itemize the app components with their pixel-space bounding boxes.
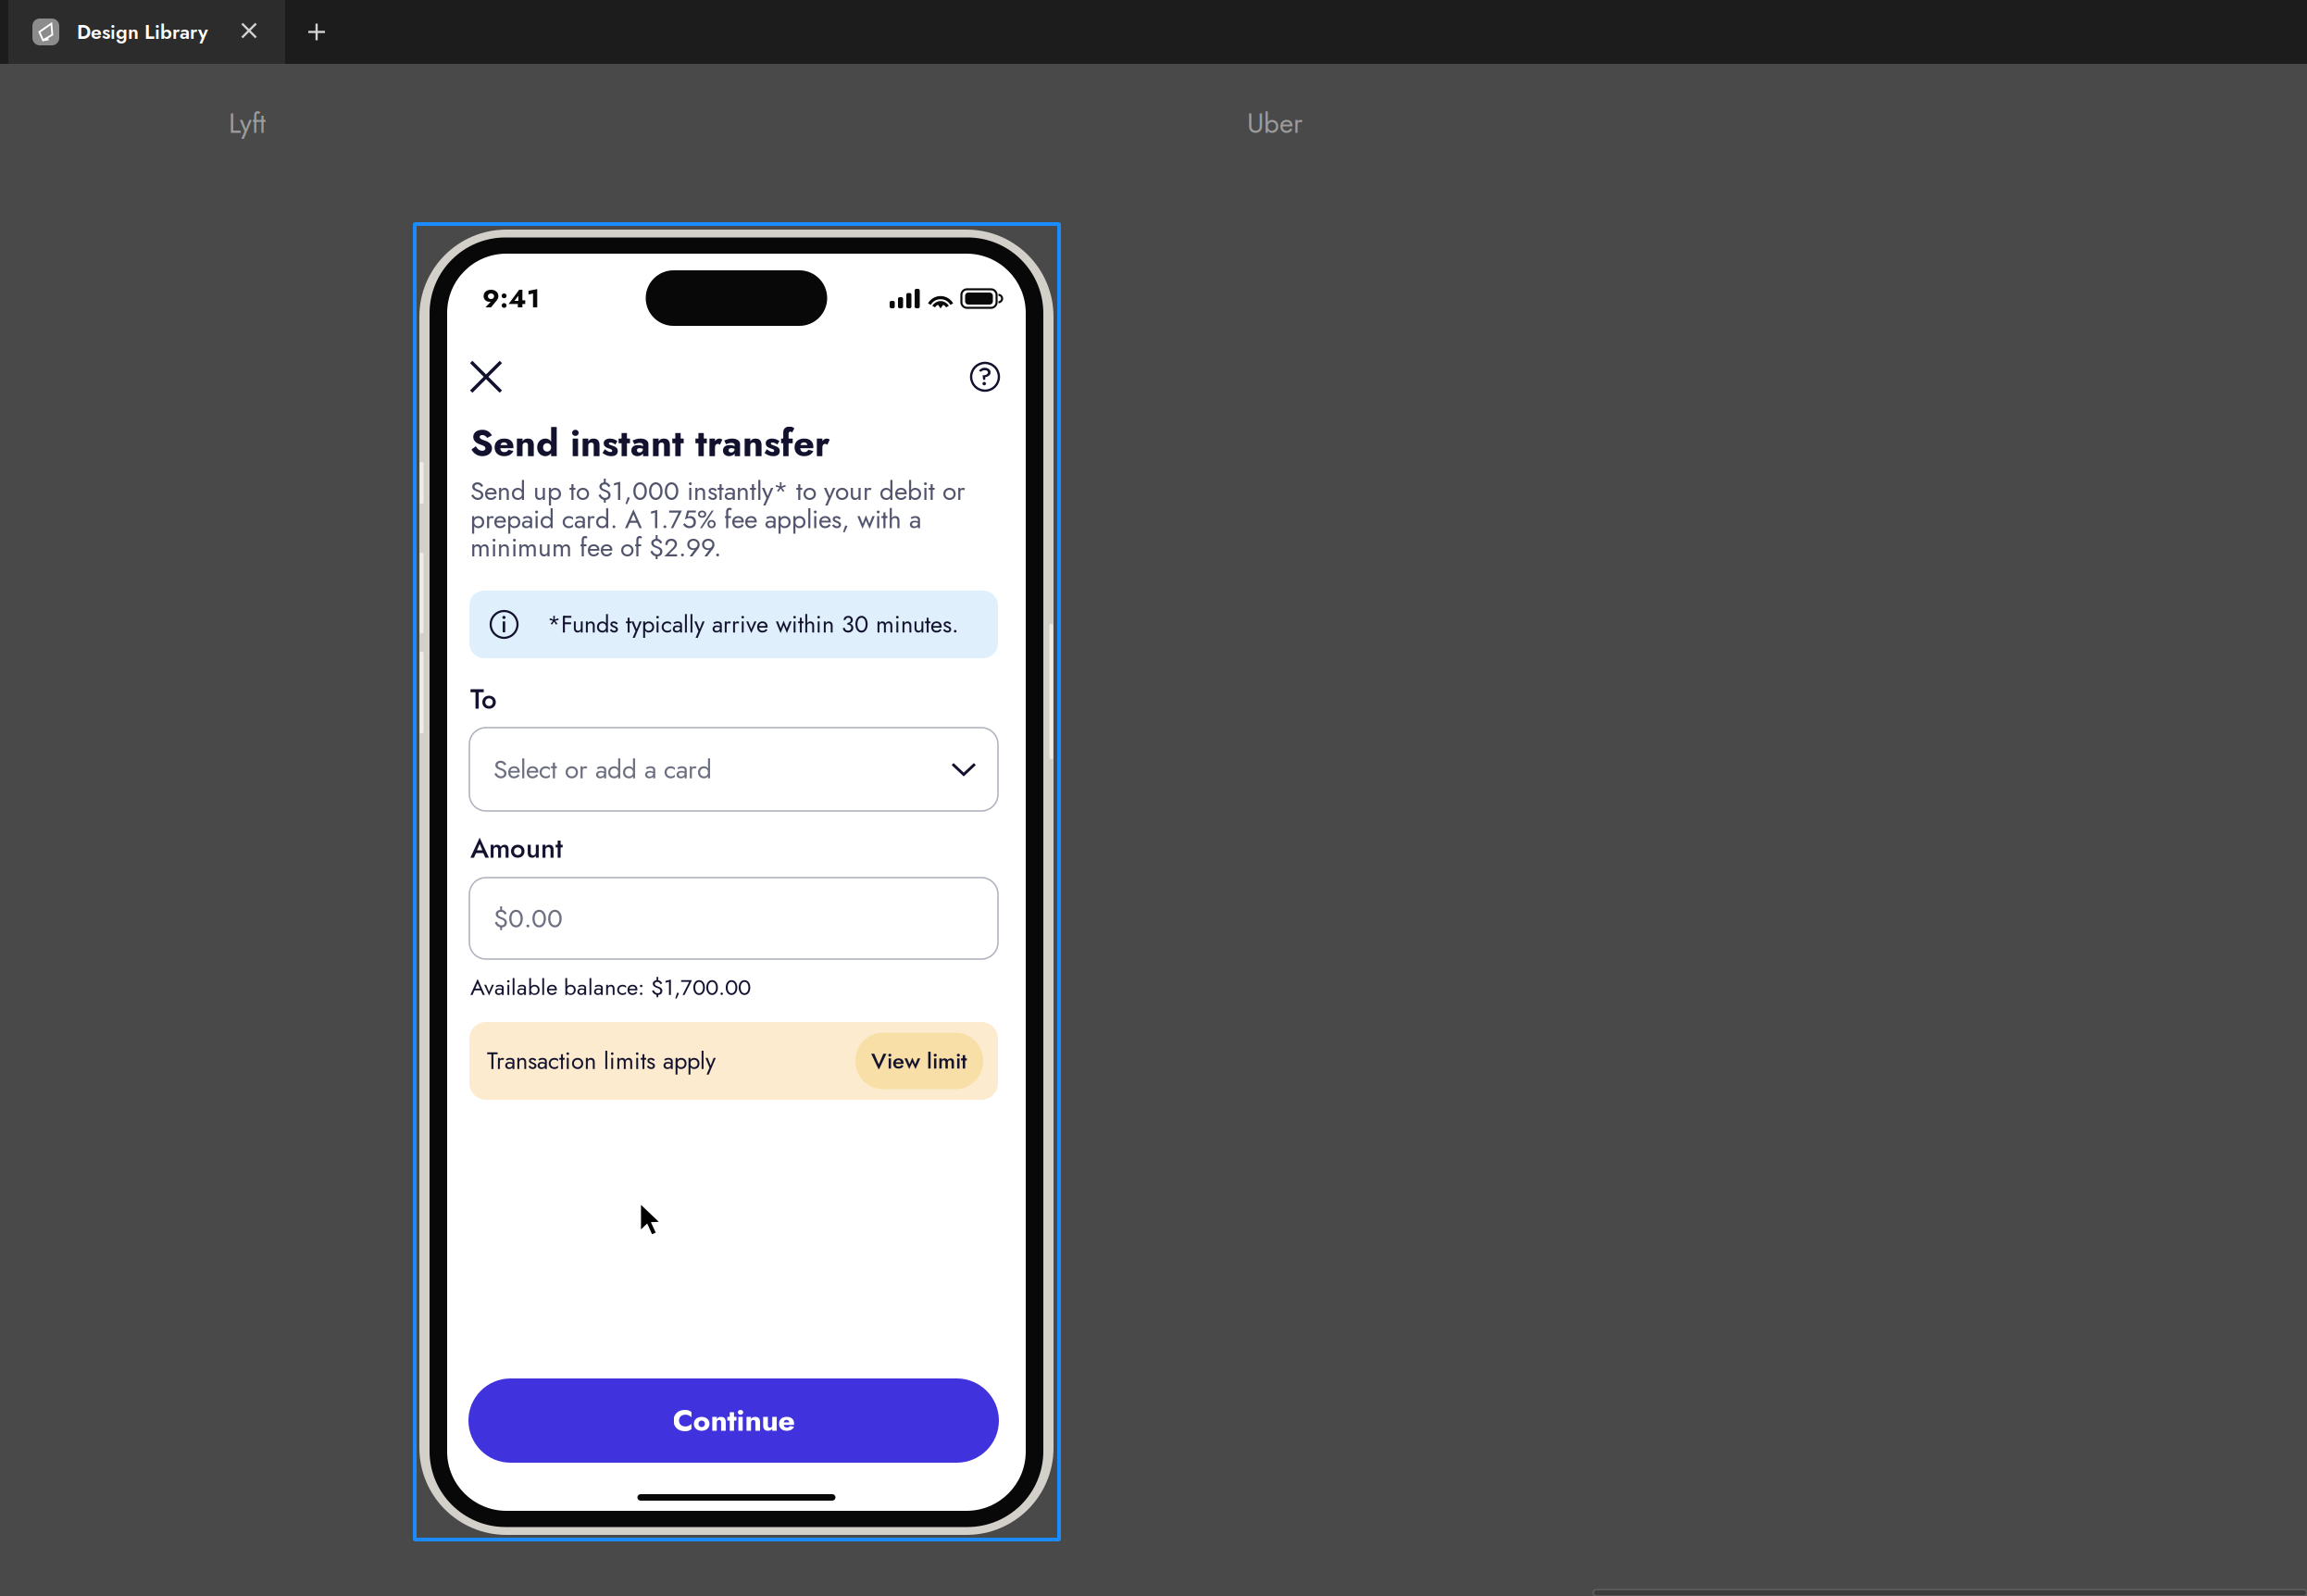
staticText: $0.00 [493, 900, 563, 937]
staticText: Amount [470, 829, 563, 868]
staticText: Lyft [229, 104, 266, 143]
button[interactable]: $0.00 [469, 878, 998, 959]
staticText: To [470, 680, 497, 719]
button[interactable]: Close [460, 351, 512, 403]
staticText: Transaction limits apply [487, 1044, 716, 1078]
button[interactable]: Help [959, 351, 1011, 403]
staticText: Uber [1247, 104, 1303, 143]
button[interactable]: New tab [289, 0, 344, 64]
staticText: Design Library [77, 18, 208, 46]
staticText: i [501, 607, 507, 641]
button[interactable]: Select or add a card [469, 728, 998, 811]
staticText: Continue [673, 1399, 795, 1442]
staticText: 9:41 [482, 280, 540, 317]
staticText: ? [978, 359, 992, 395]
button[interactable]: Close tab [229, 10, 269, 51]
staticText: *Funds typically arrive within 30 minute… [547, 607, 959, 641]
button[interactable]: Design Library [8, 0, 285, 64]
staticText: Send instant transfer [470, 417, 829, 470]
staticText: Send up to $1,000 instantly* to your deb… [470, 477, 966, 562]
staticText: View limit [871, 1045, 967, 1077]
button[interactable]: View limit [855, 1033, 983, 1089]
staticText: Select or add a card [493, 751, 712, 788]
staticText: Available balance: $1,700.00 [470, 971, 751, 1003]
button[interactable]: Continue [468, 1378, 999, 1463]
